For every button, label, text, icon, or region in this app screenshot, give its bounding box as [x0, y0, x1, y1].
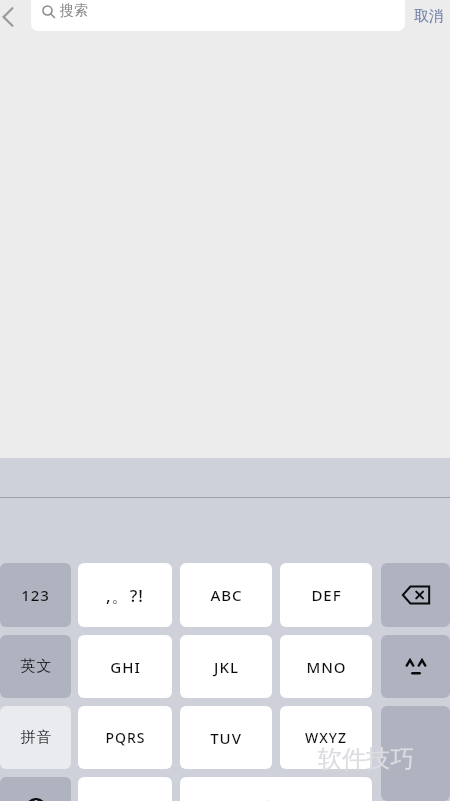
- button[interactable]: Switch language: [0, 777, 71, 801]
- button[interactable]: GHI: [78, 635, 172, 698]
- staticText: WXYZ: [305, 728, 347, 747]
- button[interactable]: MNO: [280, 635, 372, 698]
- button[interactable]: TUV: [180, 706, 272, 769]
- button[interactable]: Emoticon: [381, 635, 450, 698]
- button[interactable]: 拼音: [0, 706, 71, 769]
- staticText: JKL: [214, 657, 239, 677]
- button[interactable]: JKL: [180, 635, 272, 698]
- staticText: TUV: [210, 728, 242, 748]
- staticText: 拼音: [20, 728, 52, 747]
- staticText: 搜索: [60, 2, 88, 20]
- button[interactable]: 搜索: [31, 0, 405, 31]
- button[interactable]: [381, 706, 450, 801]
- staticText: MNO: [306, 657, 347, 677]
- button[interactable]: WXYZ: [280, 706, 372, 769]
- button[interactable]: 英文: [0, 635, 71, 698]
- button[interactable]: 123: [0, 563, 71, 627]
- button[interactable]: PQRS: [78, 706, 172, 769]
- staticText: 取消: [414, 7, 444, 26]
- staticText: DEF: [311, 585, 342, 605]
- staticText: 123: [21, 585, 50, 605]
- button[interactable]: DEF: [280, 563, 372, 627]
- staticText: GHI: [110, 657, 141, 677]
- staticText: ,。?!: [106, 584, 144, 607]
- staticText: 空格: [260, 799, 292, 801]
- staticText: ABC: [210, 585, 243, 605]
- button[interactable]: Back: [0, 0, 25, 34]
- staticText: PQRS: [105, 728, 146, 747]
- staticText: 软件技巧: [318, 744, 414, 774]
- button[interactable]: ,。?!: [78, 563, 172, 627]
- button[interactable]: Delete: [381, 563, 450, 627]
- button[interactable]: 取消: [414, 2, 444, 30]
- staticText: 英文: [20, 657, 52, 676]
- button[interactable]: 0: [78, 777, 172, 801]
- button[interactable]: ABC: [180, 563, 272, 627]
